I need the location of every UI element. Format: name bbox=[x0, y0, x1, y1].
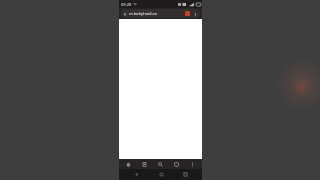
staticText: m.babyhaid.com/crestoricz/inst bbox=[129, 11, 157, 16]
button[interactable]: Menu bbox=[186, 159, 199, 169]
button[interactable]: Bookmarks bbox=[138, 159, 151, 169]
button[interactable]: Recents bbox=[177, 169, 193, 180]
button[interactable]: Home bbox=[153, 169, 169, 180]
button[interactable]: Back bbox=[128, 169, 144, 180]
button[interactable]: More options bbox=[192, 11, 198, 17]
button[interactable]: Account bbox=[185, 11, 190, 16]
button[interactable]: Search bbox=[154, 159, 167, 169]
staticText: 09:28 bbox=[121, 2, 132, 7]
button[interactable]: m.babyhaid.com/crestoricz/inst bbox=[121, 9, 200, 18]
button[interactable]: Tabs bbox=[170, 159, 183, 169]
button[interactable]: Home bbox=[122, 159, 135, 169]
